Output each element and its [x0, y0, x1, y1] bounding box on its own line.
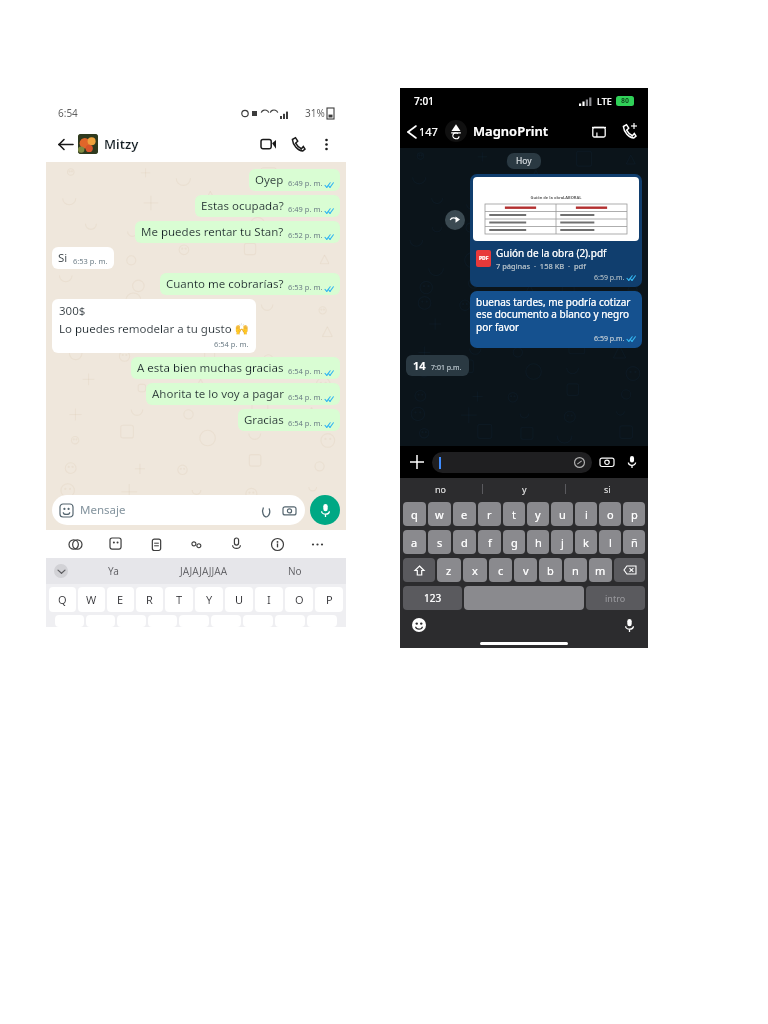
- button[interactable]: Me puedes rentar tu Stan?: [135, 221, 340, 243]
- button[interactable]: s: [428, 530, 451, 554]
- button[interactable]: x: [463, 558, 487, 582]
- button[interactable]: Store: [589, 121, 609, 141]
- button[interactable]: Attach: [407, 452, 427, 472]
- staticText: PDF: [479, 255, 489, 262]
- button[interactable]: m: [589, 558, 612, 582]
- button[interactable]: k: [575, 530, 597, 554]
- button[interactable]: Space: [464, 586, 584, 610]
- button[interactable]: Mitzy: [104, 135, 258, 153]
- button[interactable]: Profile photo: [445, 120, 467, 142]
- button[interactable]: Q: [49, 587, 76, 612]
- button[interactable]: w: [428, 502, 451, 526]
- button[interactable]: f: [478, 530, 501, 554]
- button[interactable]: q: [403, 502, 426, 526]
- button[interactable]: Estas ocupada?: [195, 195, 340, 217]
- button[interactable]: P: [315, 587, 343, 612]
- button[interactable]: Tool 7: [306, 533, 328, 555]
- button[interactable]: No: [249, 558, 340, 584]
- button[interactable]: O: [285, 587, 313, 612]
- button[interactable]: Emoji: [410, 616, 428, 634]
- button[interactable]: Profile photo: [78, 134, 98, 154]
- button[interactable]: Forward: [445, 210, 465, 230]
- button[interactable]: buenas tardes, me podría cotizar ese doc…: [470, 291, 642, 348]
- button[interactable]: Collapse: [54, 564, 68, 578]
- button[interactable]: I: [255, 587, 283, 612]
- button[interactable]: l: [599, 530, 621, 554]
- button[interactable]: ñ: [623, 530, 645, 554]
- button[interactable]: h: [527, 530, 549, 554]
- button[interactable]: More options: [316, 134, 336, 154]
- button[interactable]: g: [503, 530, 525, 554]
- button[interactable]: E: [107, 587, 134, 612]
- button[interactable]: Voice message: [310, 495, 340, 525]
- button[interactable]: j: [551, 530, 573, 554]
- button[interactable]: MagnoPrint: [473, 122, 589, 140]
- button[interactable]: Ya: [68, 558, 158, 584]
- button[interactable]: Voice input: [620, 616, 638, 634]
- button[interactable]: [432, 452, 592, 473]
- button[interactable]: o: [599, 502, 621, 526]
- button[interactable]: A esta bien muchas gracias: [131, 357, 340, 379]
- button[interactable]: W: [78, 587, 105, 612]
- button[interactable]: Tool 2: [105, 533, 127, 555]
- button[interactable]: Si: [52, 247, 114, 269]
- button[interactable]: R: [136, 587, 163, 612]
- button[interactable]: no: [400, 478, 482, 500]
- button[interactable]: n: [564, 558, 587, 582]
- button[interactable]: Tool 6: [266, 533, 288, 555]
- button[interactable]: Back, 147 unread: [407, 124, 438, 139]
- button[interactable]: d: [453, 530, 476, 554]
- button[interactable]: Add call: [619, 121, 639, 141]
- button[interactable]: Ahorita te lo voy a pagar: [146, 383, 340, 405]
- button[interactable]: Tool 3: [145, 533, 167, 555]
- button[interactable]: 14: [406, 355, 469, 376]
- button[interactable]: U: [225, 587, 253, 612]
- button[interactable]: Cuanto me cobrarías?: [160, 273, 340, 295]
- button[interactable]: Attach: [258, 503, 273, 518]
- button[interactable]: e: [453, 502, 476, 526]
- button[interactable]: Video call: [258, 134, 278, 154]
- button[interactable]: a: [403, 530, 426, 554]
- button[interactable]: Backspace: [614, 558, 645, 582]
- button[interactable]: T: [165, 587, 193, 612]
- button[interactable]: i: [575, 502, 597, 526]
- button[interactable]: Voice message: [623, 453, 641, 471]
- button[interactable]: u: [551, 502, 573, 526]
- button[interactable]: r: [478, 502, 501, 526]
- button[interactable]: Tool 1: [64, 533, 86, 555]
- button[interactable]: c: [489, 558, 512, 582]
- button[interactable]: 123: [403, 586, 462, 610]
- button[interactable]: Mensaje: [52, 495, 305, 525]
- button[interactable]: si: [566, 478, 648, 500]
- button[interactable]: Voice call: [288, 134, 308, 154]
- button[interactable]: Camera: [282, 503, 297, 518]
- button[interactable]: Oyep: [249, 169, 340, 191]
- button[interactable]: Camera: [598, 453, 616, 471]
- button[interactable]: p: [623, 502, 645, 526]
- button[interactable]: y: [527, 502, 549, 526]
- button[interactable]: Gracias: [238, 409, 340, 431]
- button[interactable]: t: [503, 502, 525, 526]
- button[interactable]: Shift: [403, 558, 435, 582]
- button[interactable]: JAJAJAJJAA: [158, 558, 249, 584]
- button[interactable]: v: [514, 558, 537, 582]
- button[interactable]: Tool 4: [185, 533, 207, 555]
- button[interactable]: Tool 5: [225, 533, 247, 555]
- button[interactable]: intro: [586, 586, 645, 610]
- button[interactable]: Y: [195, 587, 223, 612]
- button[interactable]: b: [539, 558, 562, 582]
- button[interactable]: Guión de la obraLABORAL: [470, 174, 642, 287]
- button[interactable]: 300$: [52, 299, 256, 353]
- button[interactable]: Back: [54, 133, 76, 155]
- button[interactable]: z: [437, 558, 461, 582]
- button[interactable]: y: [483, 478, 565, 500]
